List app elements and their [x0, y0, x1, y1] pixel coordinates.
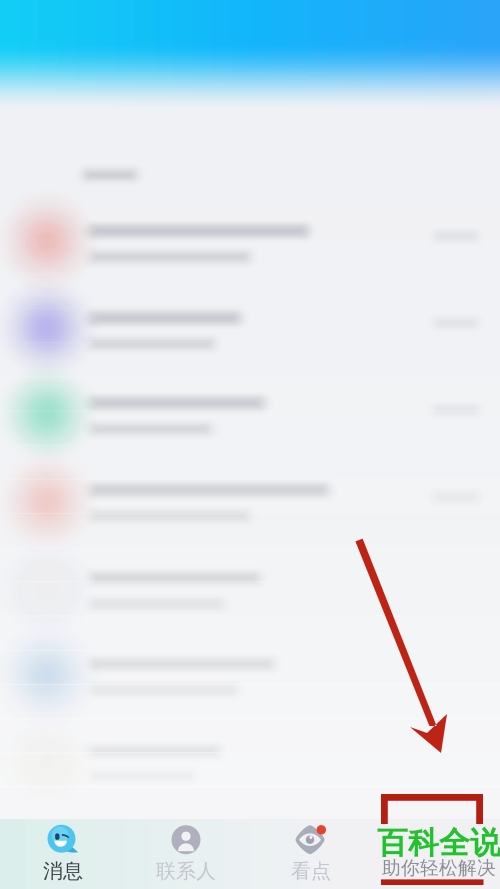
staticText: 消息: [43, 859, 83, 883]
button[interactable]: 消息: [0, 819, 126, 889]
staticText: 助你轻松解决: [382, 856, 496, 879]
staticText: 百科全说: [377, 824, 500, 862]
staticText: 联系人: [156, 859, 216, 883]
button[interactable]: 联系人: [123, 819, 249, 889]
button[interactable]: 看点: [248, 819, 374, 889]
staticText: 看点: [291, 859, 331, 883]
